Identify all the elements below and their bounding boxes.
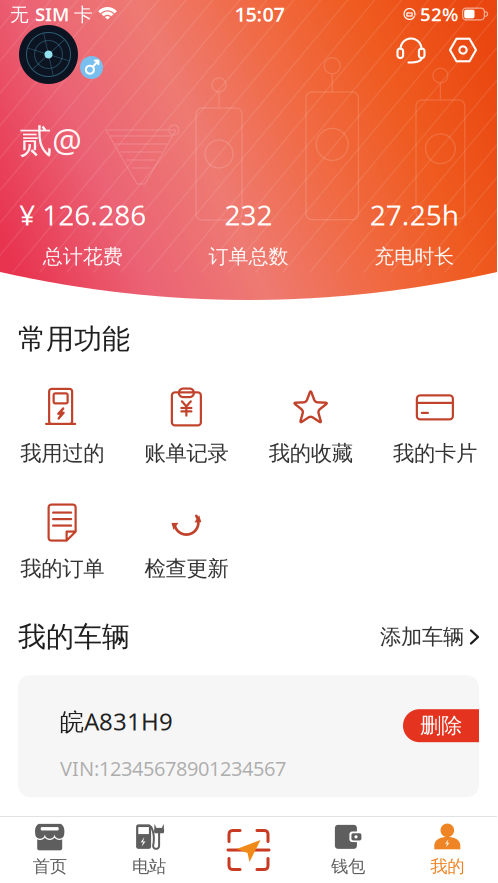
button[interactable]: 首页: [0, 823, 99, 877]
staticText: 常用功能: [18, 322, 130, 356]
staticText: 52%: [420, 2, 458, 26]
button[interactable]: 我的订单: [0, 503, 124, 582]
staticText: VIN:12345678901234567: [60, 755, 286, 782]
staticText: 订单总数: [208, 244, 288, 269]
staticText: 皖A831H9: [60, 705, 173, 737]
button[interactable]: 删除: [403, 709, 479, 742]
staticText: 删除: [420, 713, 462, 739]
staticText: 首页: [33, 856, 67, 877]
staticText: 账单记录: [144, 440, 228, 467]
staticText: 电站: [132, 856, 166, 877]
staticText: 我的: [430, 856, 464, 877]
button[interactable]: 我的: [398, 823, 497, 877]
button[interactable]: 检查更新: [124, 503, 249, 582]
staticText: 我的车辆: [18, 620, 130, 654]
button[interactable]: 账单记录: [124, 387, 249, 467]
button[interactable]: 客服: [389, 30, 433, 70]
staticText: 检查更新: [144, 556, 228, 582]
button[interactable]: 钱包: [298, 823, 398, 877]
staticText: 钱包: [331, 856, 365, 877]
staticText: 添加车辆: [380, 624, 464, 650]
staticText: 总计花费: [43, 244, 123, 269]
button[interactable]: 我用过的: [0, 387, 124, 467]
staticText: 我的订单: [20, 556, 104, 582]
button[interactable]: 我的卡片: [373, 387, 497, 467]
staticText: 27.25h: [370, 196, 459, 233]
staticText: 我的卡片: [393, 440, 477, 467]
staticText: 充电时长: [374, 244, 454, 269]
staticText: 15:07: [234, 1, 284, 27]
staticText: 我用过的: [20, 440, 104, 467]
button[interactable]: 扫一扫: [199, 827, 298, 873]
button[interactable]: 设置: [441, 30, 485, 70]
staticText: ¥ 126.286: [19, 196, 146, 233]
button[interactable]: 电站: [99, 823, 199, 877]
staticText: 无 SIM 卡: [10, 2, 93, 26]
staticText: 232: [224, 196, 272, 233]
button[interactable]: 添加车辆: [380, 624, 479, 650]
staticText: 贰@: [19, 118, 82, 162]
staticText: 我的收藏: [269, 440, 353, 467]
button[interactable]: 我的收藏: [248, 387, 373, 467]
